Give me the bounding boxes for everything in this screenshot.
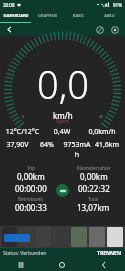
staticText: 12°C/12°C: [3, 127, 42, 137]
staticText: 00:22:32: [78, 183, 110, 194]
staticText: 0: [22, 114, 25, 119]
staticText: 91%: [113, 2, 122, 8]
staticText: BASIC: [63, 13, 94, 18]
button[interactable]: BASIC: [63, 9, 94, 22]
button[interactable]: Übersicht: [0, 258, 41, 271]
staticText: TRENNEN: [97, 250, 121, 257]
staticText: Sport: [56, 118, 69, 125]
staticText: 13,07km: [77, 202, 110, 213]
staticText: 9753mAh: [62, 140, 92, 160]
staticText: Trip: [27, 165, 36, 171]
staticText: 64%: [32, 140, 62, 150]
staticText: 0,00km: [17, 171, 45, 182]
staticText: 45: [99, 114, 104, 119]
staticText: Total: [88, 196, 99, 202]
staticText: Kilometerzähler: [77, 165, 111, 171]
staticText: 0,4W: [42, 127, 82, 137]
staticText: 00:00:00: [15, 183, 47, 194]
staticText: GRAPHEN: [32, 13, 63, 18]
button[interactable]: Startbildschirm: [41, 258, 83, 271]
staticText: Status: Verbunden: [3, 250, 47, 257]
staticText: 0,0: [37, 58, 89, 110]
button[interactable]: Synchronisieren: [94, 24, 106, 36]
staticText: 0,0km/h: [82, 127, 122, 137]
staticText: 41,6km: [92, 140, 122, 150]
button[interactable]: Zurück: [83, 258, 125, 271]
button[interactable]: Fahrzeug: [56, 184, 69, 197]
button[interactable]: AKKU: [94, 9, 125, 22]
staticText: km/h: [53, 110, 73, 121]
staticText: DASHBOARD: [0, 13, 32, 18]
staticText: 00:00:33: [15, 202, 47, 213]
staticText: 0,00km: [80, 171, 108, 182]
button[interactable]: Anzeige: [109, 24, 121, 36]
button[interactable]: TRENNEN: [96, 250, 122, 257]
button[interactable]: GRAPHEN: [32, 9, 63, 22]
button[interactable]: DASHBOARD: [0, 9, 32, 22]
button[interactable]: Zurück: [4, 24, 15, 35]
staticText: 20:08: [3, 2, 15, 8]
staticText: AKKU: [94, 13, 125, 18]
staticText: 37,90V: [3, 140, 32, 150]
staticText: Betriebszeit: [18, 196, 44, 202]
